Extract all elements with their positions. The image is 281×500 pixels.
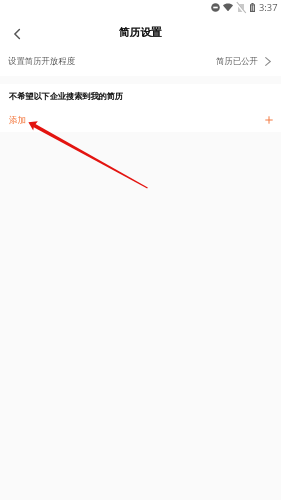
- staticText: 不希望以下企业搜索到我的简历: [9, 91, 123, 101]
- staticText: 3:37: [259, 1, 278, 14]
- staticText: 不希望以下企业搜索到我的简历: [9, 91, 123, 101]
- button[interactable]: Add company: [262, 113, 276, 127]
- staticText: 简历设置: [119, 26, 162, 39]
- staticText: 简历设置: [119, 26, 162, 39]
- staticText: 设置简历开放程度: [8, 56, 76, 67]
- staticText: 简历已公开: [216, 56, 258, 67]
- button[interactable]: Back: [0, 16, 30, 46]
- staticText: 添加: [9, 115, 26, 126]
- button[interactable]: 添加: [0, 110, 281, 130]
- button[interactable]: 设置简历开放程度: [0, 46, 281, 76]
